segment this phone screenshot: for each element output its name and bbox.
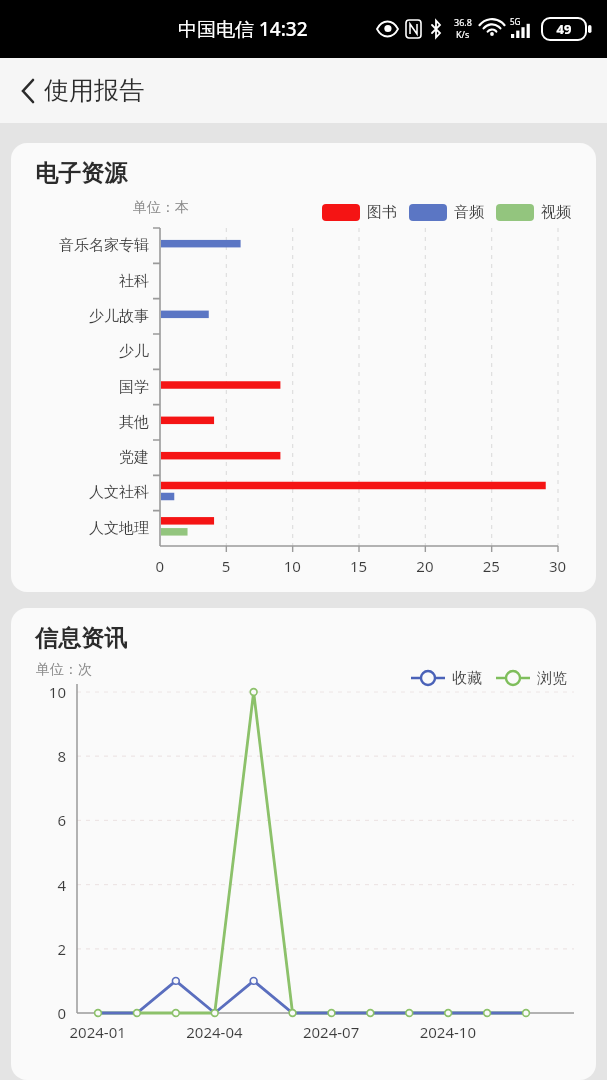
button[interactable] bbox=[11, 143, 596, 592]
button[interactable] bbox=[11, 608, 596, 1080]
button[interactable]: Back bbox=[4, 67, 52, 115]
